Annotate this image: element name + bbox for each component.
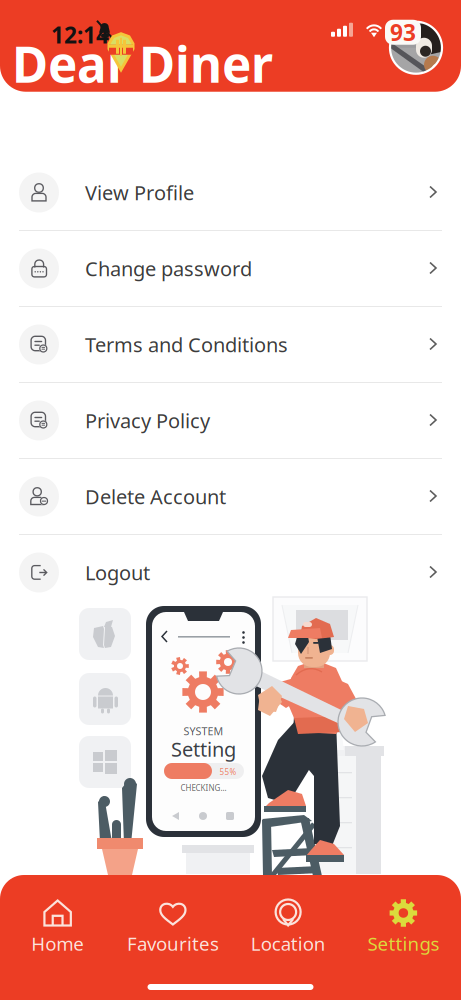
button[interactable]: Favourites (115, 880, 230, 968)
staticText: View Profile (85, 179, 194, 206)
staticText: SYSTEM (183, 724, 223, 738)
button[interactable]: Settings (346, 880, 461, 968)
button[interactable]: Logout (0, 535, 461, 610)
staticText: Terms and Conditions (85, 331, 288, 358)
staticText: Delete Account (85, 483, 226, 510)
button[interactable]: Delete Account (0, 459, 461, 534)
staticText: 55% (219, 767, 236, 777)
button[interactable]: Privacy Policy (0, 383, 461, 458)
staticText: Favourites (127, 931, 219, 956)
button[interactable]: Location (230, 880, 346, 968)
staticText: Diner (139, 31, 273, 96)
staticText: Home (31, 931, 84, 956)
staticText: Logout (85, 559, 150, 586)
staticText: Privacy Policy (85, 407, 210, 434)
staticText: 93 (390, 17, 416, 47)
staticText: Deal (12, 31, 122, 96)
button[interactable]: Home (0, 880, 115, 968)
staticText: CHECKING... (180, 783, 226, 793)
staticText: Change password (85, 255, 252, 282)
staticText: Settings (367, 931, 439, 956)
staticText: Location (251, 931, 326, 956)
staticText: Setting (171, 736, 236, 762)
button[interactable]: Change password (0, 231, 461, 306)
staticText: 12:14 (51, 20, 109, 50)
button[interactable]: View Profile (0, 155, 461, 230)
button[interactable]: Terms and Conditions (0, 307, 461, 382)
